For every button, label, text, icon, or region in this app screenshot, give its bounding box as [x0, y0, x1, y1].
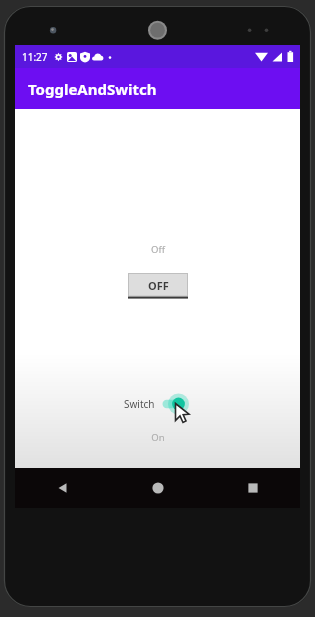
staticText: On — [128, 431, 188, 444]
staticText: Off — [128, 243, 188, 256]
button[interactable]: Back — [15, 468, 110, 508]
staticText: Switch — [124, 397, 155, 411]
staticText: ToggleAndSwitch — [28, 79, 157, 99]
staticText: 11:27 — [22, 50, 48, 64]
button[interactable]: Recents — [205, 468, 300, 508]
button[interactable]: Home — [110, 468, 205, 508]
staticText: OFF — [148, 278, 169, 293]
button[interactable]: Switch toggle, on — [161, 393, 191, 415]
button[interactable]: OFF — [128, 273, 188, 299]
